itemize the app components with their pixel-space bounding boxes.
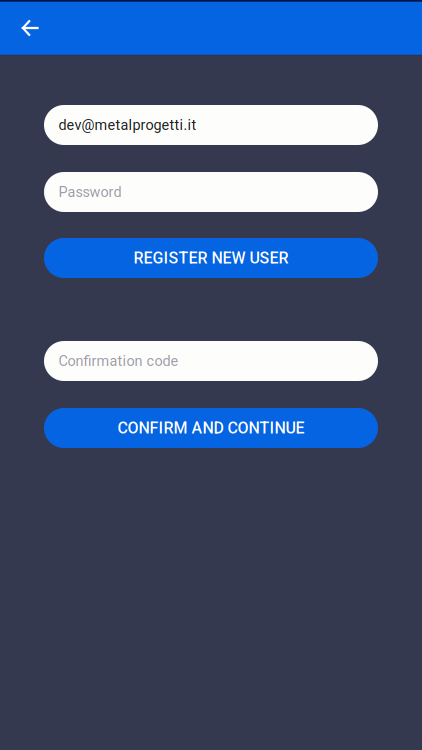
button[interactable]: REGISTER NEW USER [44, 238, 378, 278]
staticText: CONFIRM AND CONTINUE [117, 419, 304, 437]
staticText: dev@metalprogetti.it [58, 117, 196, 133]
staticText: REGISTER NEW USER [133, 249, 288, 267]
staticText: Password [58, 184, 121, 200]
button[interactable]: CONFIRM AND CONTINUE [44, 408, 378, 448]
staticText: Confirmation code [58, 353, 178, 369]
button[interactable]: Back [0, 0, 60, 56]
